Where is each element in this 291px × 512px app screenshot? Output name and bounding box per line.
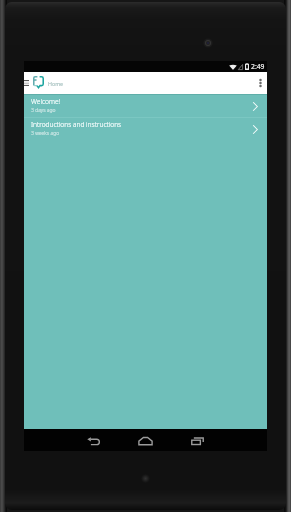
- staticText: Welcome!: [31, 97, 61, 106]
- button[interactable]: Open navigation drawer: [24, 72, 33, 94]
- staticText: 2:49: [251, 62, 265, 71]
- staticText: Home: [48, 80, 64, 87]
- staticText: Introductions and instructions: [31, 120, 122, 129]
- button[interactable]: Home: [135, 431, 155, 451]
- button[interactable]: Welcome!: [24, 95, 267, 117]
- button[interactable]: Recent apps: [187, 431, 207, 451]
- button[interactable]: More options: [254, 72, 267, 94]
- button[interactable]: Introductions and instructions: [24, 117, 267, 140]
- staticText: 3 days ago: [31, 107, 56, 114]
- staticText: 3 weeks ago: [31, 130, 60, 137]
- button[interactable]: Back: [83, 431, 103, 451]
